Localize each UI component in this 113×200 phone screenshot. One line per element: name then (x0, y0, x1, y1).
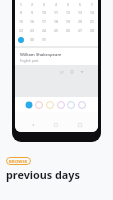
button[interactable]: colour 1 (35, 101, 43, 109)
staticText: previous days (6, 167, 80, 182)
staticText: 4 (55, 2, 57, 7)
staticText: 9 (31, 10, 33, 15)
staticText: 27 (78, 28, 82, 33)
staticText: BROWSE (9, 159, 28, 164)
button[interactable]: colour 0 (25, 101, 33, 109)
button[interactable]: Recents (77, 122, 83, 128)
staticText: 21 (90, 19, 94, 24)
staticText: 11 (54, 10, 58, 15)
staticText: 3 (43, 2, 45, 7)
button[interactable]: colour 2 (46, 101, 54, 109)
staticText: 15 (19, 19, 23, 24)
staticText: 17 (42, 19, 46, 24)
button[interactable]: colour 4 (67, 101, 75, 109)
staticText: 12 (66, 10, 70, 15)
staticText: 19 (66, 19, 70, 24)
staticText: English poet (20, 59, 39, 63)
staticText: 13 (78, 10, 82, 15)
staticText: 23 (30, 28, 34, 33)
staticText: 22 (19, 28, 23, 33)
staticText: William Shakespeare (20, 52, 62, 58)
staticText: 8 (20, 10, 22, 15)
staticText: 26 (66, 28, 70, 33)
staticText: 20 (78, 19, 82, 24)
button[interactable]: today (18, 37, 24, 43)
staticText: 30 (30, 37, 34, 42)
staticText: 28 (90, 28, 94, 33)
button[interactable]: colour 5 (78, 101, 86, 109)
staticText: 2 (31, 2, 33, 7)
button[interactable]: Home (53, 122, 59, 128)
button[interactable]: Bookmark (69, 69, 75, 75)
staticText: 10 (42, 10, 46, 15)
button[interactable]: Share (59, 69, 65, 75)
button[interactable]: Back (30, 122, 36, 128)
staticText: 18 (54, 19, 58, 24)
staticText: 5 (67, 2, 69, 7)
staticText: 24 (42, 28, 46, 33)
staticText: 1 (20, 2, 22, 7)
staticText: 14 (90, 10, 94, 15)
staticText: 7 (91, 2, 93, 7)
staticText: 25 (54, 28, 58, 33)
button[interactable]: Like (79, 69, 85, 75)
staticText: 6 (79, 2, 81, 7)
staticText: 16 (30, 19, 34, 24)
button[interactable]: BROWSE (6, 157, 31, 165)
button[interactable]: colour 3 (57, 101, 65, 109)
staticText: 31 (42, 37, 46, 42)
